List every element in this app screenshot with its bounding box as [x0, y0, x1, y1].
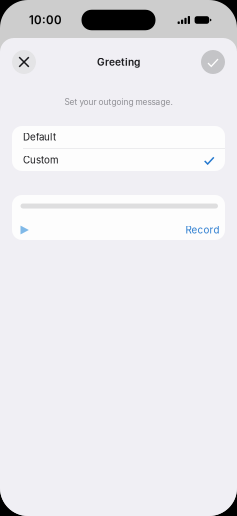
button[interactable]: Default [12, 126, 225, 148]
staticText: Custom [23, 154, 59, 166]
button[interactable]: Custom [12, 149, 225, 171]
button[interactable]: Close [12, 50, 36, 74]
staticText: Set your outgoing message. [64, 97, 172, 107]
staticText: Default [23, 131, 56, 143]
button[interactable]: Play [20, 223, 38, 237]
button[interactable]: Record [185, 224, 219, 236]
staticText: Record [185, 224, 219, 236]
button[interactable]: Done [201, 50, 225, 74]
staticText: 10:00 [29, 13, 62, 27]
staticText: Greeting [97, 56, 140, 68]
